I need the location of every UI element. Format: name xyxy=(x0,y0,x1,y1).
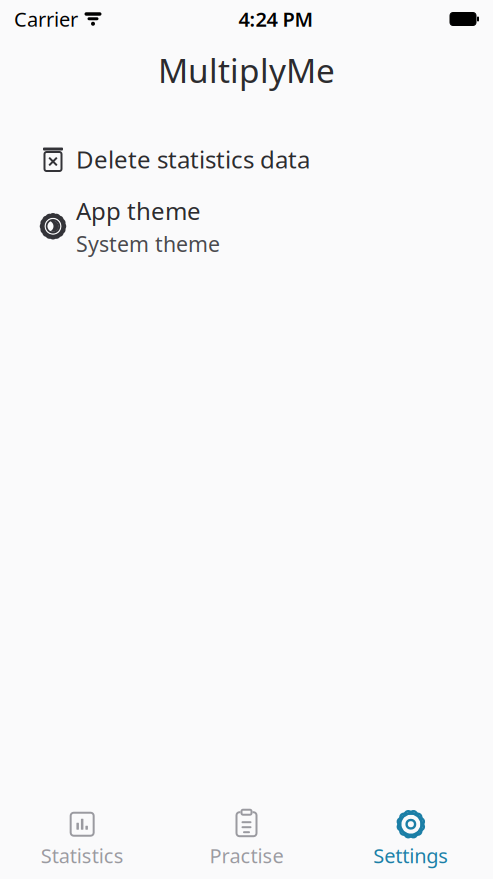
button[interactable]: Statistics xyxy=(0,801,164,879)
staticText: Settings xyxy=(373,842,448,869)
staticText: MultiplyMe xyxy=(158,48,335,92)
staticText: Carrier xyxy=(14,6,78,32)
button[interactable]: Settings xyxy=(329,801,493,879)
button[interactable]: Practise xyxy=(164,801,329,879)
staticText: Delete statistics data xyxy=(76,143,310,175)
staticText: Statistics xyxy=(41,842,124,869)
button[interactable]: App theme xyxy=(0,194,493,258)
button[interactable]: Delete statistics data xyxy=(0,130,493,188)
staticText: System theme xyxy=(76,229,220,258)
staticText: App theme xyxy=(76,195,201,227)
staticText: 4:24 PM xyxy=(238,6,313,32)
staticText: Practise xyxy=(209,842,283,869)
